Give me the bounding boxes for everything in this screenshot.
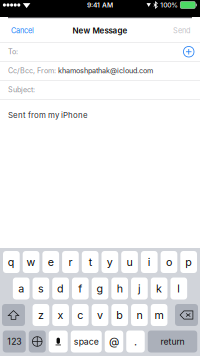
staticText: l — [177, 282, 180, 295]
button[interactable]: x — [52, 304, 69, 326]
button[interactable]: y — [101, 251, 118, 273]
staticText: Sent from my iPhone — [8, 110, 88, 120]
button[interactable]: a — [13, 277, 30, 299]
button[interactable]: r — [62, 251, 79, 273]
button[interactable]: d — [52, 277, 69, 299]
staticText: u — [127, 255, 133, 268]
button[interactable]: g — [92, 277, 108, 299]
button[interactable]: Next keyboard — [29, 330, 46, 352]
staticText: g — [96, 282, 103, 295]
button[interactable]: Delete — [175, 304, 198, 326]
staticText: h — [117, 282, 123, 295]
button[interactable]: space — [71, 330, 102, 352]
staticText: w — [27, 255, 36, 268]
button[interactable]: u — [121, 251, 138, 273]
button[interactable]: e — [42, 251, 59, 273]
staticText: k — [156, 282, 162, 295]
staticText: z — [38, 308, 44, 321]
staticText: x — [58, 308, 64, 321]
button[interactable]: p — [180, 251, 197, 273]
staticText: a — [18, 282, 24, 295]
button[interactable]: k — [151, 277, 167, 299]
staticText: f — [78, 282, 82, 295]
button[interactable]: b — [111, 304, 128, 326]
button[interactable]: . — [126, 330, 145, 352]
staticText: khamoshpathak@icloud.com — [56, 66, 153, 75]
button[interactable]: s — [33, 277, 49, 299]
staticText: n — [136, 308, 142, 321]
button[interactable]: h — [111, 277, 128, 299]
staticText: 100% — [160, 1, 178, 9]
staticText: p — [185, 255, 192, 268]
button[interactable]: Cancel — [0, 19, 43, 42]
button[interactable]: return — [148, 330, 197, 352]
staticText: b — [116, 308, 123, 321]
staticText: v — [97, 308, 103, 321]
button[interactable]: n — [131, 304, 148, 326]
button[interactable]: z — [32, 304, 49, 326]
staticText: o — [166, 255, 172, 268]
staticText: y — [107, 255, 113, 268]
button[interactable]: i — [141, 251, 158, 273]
staticText: c — [77, 308, 83, 321]
button[interactable]: v — [92, 304, 108, 326]
staticText: space — [74, 336, 99, 347]
staticText: s — [38, 282, 44, 295]
staticText: To: — [8, 47, 18, 56]
button[interactable]: f — [72, 277, 89, 299]
staticText: . — [134, 335, 137, 348]
staticText: d — [57, 282, 64, 295]
staticText: j — [138, 282, 141, 295]
staticText: m — [155, 308, 164, 321]
staticText: Cc/Bcc, From: — [8, 66, 56, 75]
button[interactable]: t — [82, 251, 98, 273]
button[interactable]: j — [131, 277, 148, 299]
button[interactable]: l — [170, 277, 187, 299]
staticText: r — [68, 255, 72, 268]
staticText: e — [48, 255, 54, 268]
button[interactable]: 123 — [3, 330, 26, 352]
staticText: Cancel — [11, 26, 34, 35]
staticText: 123 — [7, 336, 21, 347]
staticText: New Message — [72, 26, 127, 35]
staticText: @ — [109, 335, 119, 348]
button[interactable]: Dictation — [49, 330, 68, 352]
button[interactable]: q — [3, 251, 20, 273]
button[interactable]: o — [161, 251, 177, 273]
button[interactable]: w — [23, 251, 39, 273]
staticText: i — [148, 255, 151, 268]
staticText: q — [8, 255, 15, 268]
button[interactable]: Send — [164, 19, 200, 42]
staticText: t — [89, 255, 92, 268]
button[interactable]: c — [72, 304, 89, 326]
staticText: Subject: — [8, 85, 35, 94]
staticText: return — [160, 336, 184, 347]
button[interactable]: m — [151, 304, 167, 326]
button[interactable]: Shift — [2, 304, 25, 326]
staticText: Send — [173, 26, 190, 35]
button[interactable]: @ — [105, 330, 123, 352]
button[interactable]: Add contact — [183, 46, 194, 57]
staticText: 9:41 AM — [87, 1, 113, 9]
